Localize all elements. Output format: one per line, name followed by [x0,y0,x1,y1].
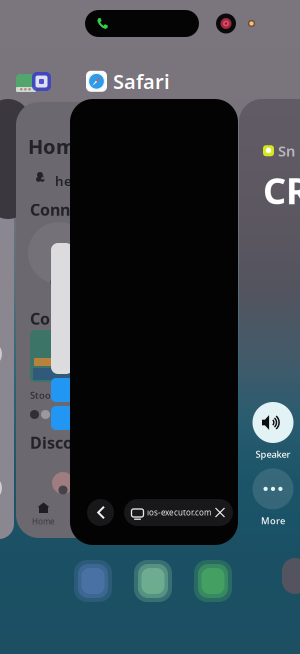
staticText: Safari [113,68,170,95]
staticText: Discover [30,432,99,453]
button[interactable]: Back [87,499,114,526]
staticText: Conti [30,308,72,329]
button[interactable]: Address [124,499,233,526]
staticText: Home [28,133,88,160]
staticText: Home [32,516,55,527]
staticText: Connect [30,199,95,220]
button[interactable]: More [243,468,300,527]
button[interactable]: Speaker [243,402,300,460]
staticText: hey [55,172,79,190]
staticText: More [261,514,285,527]
staticText: Sn [278,141,295,160]
staticText: ios-executor.com [147,507,211,518]
staticText: CR [263,166,300,214]
staticText: Stool a [30,389,61,401]
staticText: Cm [50,277,62,288]
staticText: Speaker [255,448,290,460]
